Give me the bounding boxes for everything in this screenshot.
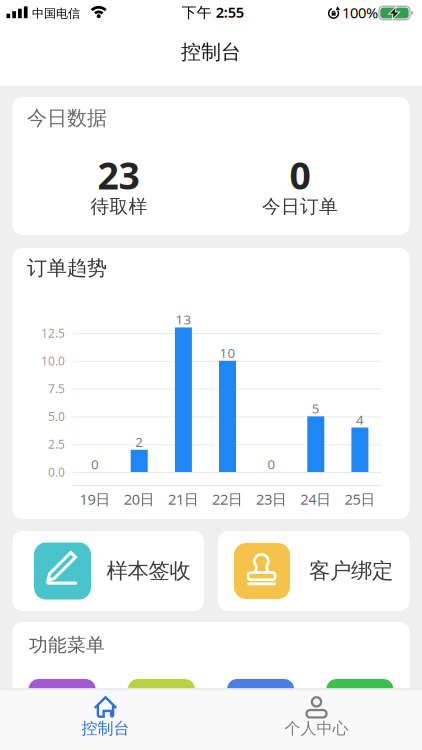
staticText: 23 bbox=[97, 150, 139, 200]
staticText: 客户绑定 bbox=[309, 558, 393, 584]
button[interactable]: 功能菜单项1 bbox=[29, 679, 96, 735]
button[interactable]: 功能菜单项4 bbox=[326, 679, 393, 735]
staticText: 待取样 bbox=[90, 195, 147, 218]
staticText: 10 bbox=[219, 344, 235, 362]
staticText: 19日 bbox=[80, 489, 111, 509]
staticText: 今日数据 bbox=[27, 106, 107, 130]
staticText: 13 bbox=[175, 311, 191, 328]
button[interactable]: 个人中心 bbox=[264, 688, 369, 750]
staticText: 个人中心 bbox=[284, 719, 348, 738]
staticText: 100% bbox=[342, 3, 378, 22]
staticText: 25日 bbox=[344, 489, 375, 509]
staticText: 12.5 bbox=[41, 325, 65, 341]
staticText: 下午 2:55 bbox=[182, 2, 244, 22]
staticText: 功能菜单 bbox=[29, 633, 105, 656]
button[interactable]: 控制台 bbox=[53, 688, 158, 750]
staticText: 20日 bbox=[124, 489, 155, 509]
staticText: 5 bbox=[312, 399, 320, 417]
staticText: 0.0 bbox=[48, 464, 65, 480]
staticText: 0 bbox=[289, 150, 310, 200]
staticText: 5.0 bbox=[48, 408, 65, 424]
staticText: 控制台 bbox=[181, 40, 241, 64]
staticText: 样本签收 bbox=[106, 558, 190, 584]
staticText: 23日 bbox=[256, 489, 287, 509]
staticText: 4 bbox=[356, 411, 364, 428]
staticText: 21日 bbox=[168, 489, 199, 509]
staticText: 24日 bbox=[300, 489, 331, 509]
staticText: 22日 bbox=[212, 489, 243, 509]
button[interactable]: 客户绑定 bbox=[218, 531, 409, 611]
staticText: 10.0 bbox=[41, 353, 65, 369]
button[interactable]: 样本签收 bbox=[12, 531, 204, 611]
staticText: 订单趋势 bbox=[27, 256, 107, 280]
staticText: 今日订单 bbox=[262, 195, 338, 218]
button[interactable]: 功能菜单项3 bbox=[227, 679, 294, 735]
staticText: 2.5 bbox=[48, 436, 65, 452]
button[interactable]: 功能菜单项2 bbox=[128, 679, 195, 735]
staticText: 控制台 bbox=[81, 719, 129, 738]
staticText: 0 bbox=[268, 455, 276, 473]
staticText: 中国电信 bbox=[32, 6, 80, 21]
staticText: 2 bbox=[135, 433, 143, 451]
staticText: 0 bbox=[91, 455, 99, 473]
staticText: 7.5 bbox=[48, 381, 65, 396]
